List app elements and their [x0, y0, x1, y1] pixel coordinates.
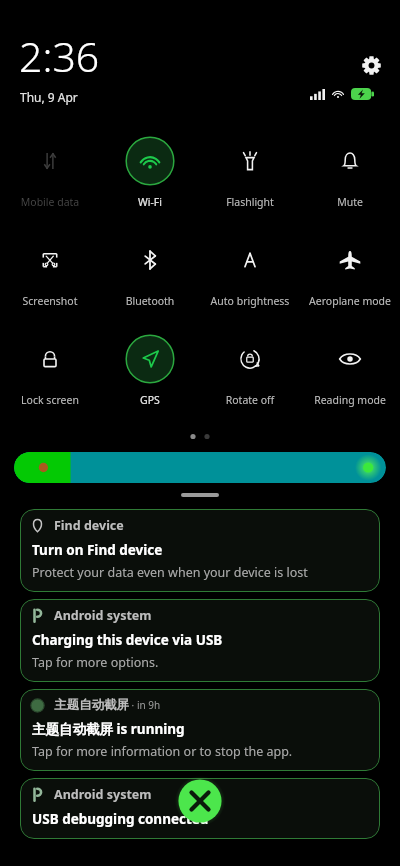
staticText: Mute	[300, 195, 400, 209]
staticText: Lock screen	[0, 393, 100, 407]
staticText: 主题自动截屏	[54, 697, 129, 713]
staticText: 2:36	[19, 28, 100, 84]
button[interactable]: Wi-Fi	[100, 128, 200, 209]
staticText: Tap for more information or to stop the …	[32, 743, 293, 760]
staticText: Turn on Find device	[32, 541, 163, 559]
button[interactable]: GPS	[100, 326, 200, 407]
staticText: Find device	[54, 517, 124, 534]
staticText: Aeroplane mode	[300, 294, 400, 308]
staticText: Screenshot	[0, 294, 100, 308]
staticText: Thu, 9 Apr	[20, 89, 78, 105]
staticText: USB debugging connected	[32, 810, 209, 828]
button[interactable]: Find device	[20, 509, 380, 592]
staticText: Tap for more options.	[32, 654, 159, 671]
button[interactable]: Mute	[300, 128, 400, 209]
button[interactable]: Android system	[20, 599, 380, 682]
button[interactable]: Bluetooth	[100, 227, 200, 308]
staticText: Rotate off	[200, 393, 300, 407]
button[interactable]: Clear all notifications	[175, 776, 225, 826]
staticText: Flashlight	[200, 195, 300, 209]
button[interactable]: 主题自动截屏	[20, 689, 380, 771]
staticText: Android system	[54, 607, 152, 624]
button[interactable]: Screenshot	[0, 227, 100, 308]
staticText: GPS	[100, 393, 200, 407]
staticText: Wi-Fi	[100, 195, 200, 209]
staticText: Protect your data even when your device …	[32, 564, 308, 581]
staticText: Reading mode	[300, 393, 400, 407]
button[interactable]: Auto brightness	[200, 227, 300, 308]
button[interactable]: Brightness	[14, 452, 386, 483]
staticText: Auto brightness	[200, 294, 300, 308]
button[interactable]: Lock screen	[0, 326, 100, 407]
staticText: Android system	[54, 786, 152, 803]
button[interactable]: Android system	[20, 778, 380, 839]
button[interactable]: Flashlight	[200, 128, 300, 209]
button[interactable]: Settings	[356, 50, 386, 80]
staticText: Charging this device via USB	[32, 631, 223, 649]
staticText: · in 9h	[129, 698, 161, 712]
button[interactable]: Mobile data	[0, 128, 100, 209]
staticText: Mobile data	[0, 195, 100, 209]
button[interactable]: Reading mode	[300, 326, 400, 407]
staticText: Bluetooth	[100, 294, 200, 308]
button[interactable]: Rotate off	[200, 326, 300, 407]
button[interactable]: Aeroplane mode	[300, 227, 400, 308]
staticText: 主题自动截屏 is running	[32, 720, 185, 738]
